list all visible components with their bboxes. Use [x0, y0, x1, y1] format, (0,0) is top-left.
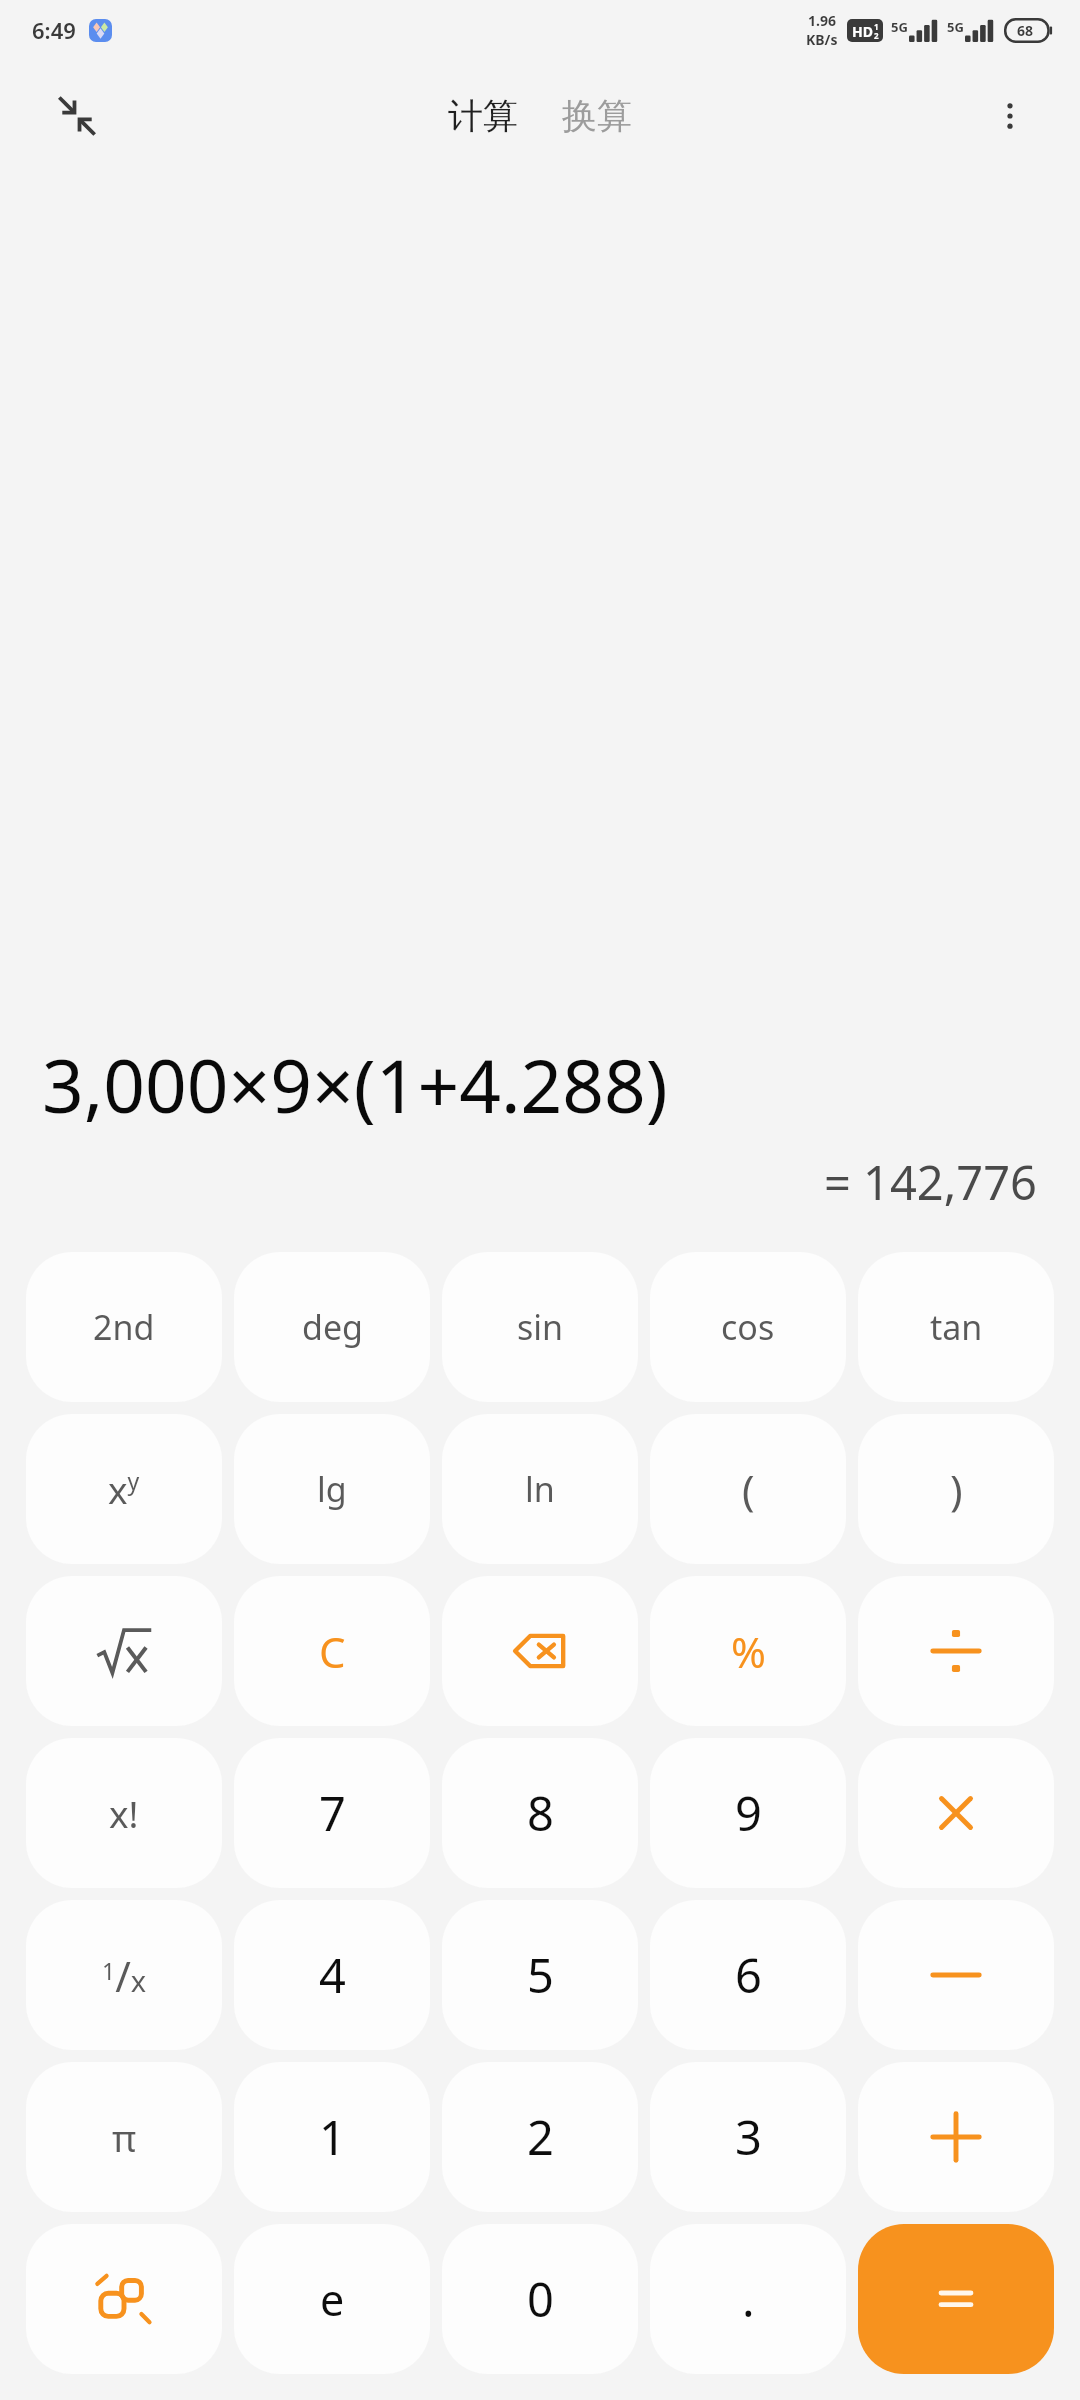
- staticText: xy: [108, 1464, 140, 1514]
- staticText: 3,000×9×(1+4.288): [42, 1035, 668, 1134]
- staticText: ): [950, 1461, 963, 1518]
- button[interactable]: Multiply: [858, 1738, 1054, 1888]
- staticText: e: [320, 2270, 345, 2329]
- button[interactable]: (: [650, 1414, 846, 1564]
- staticText: π: [112, 2112, 137, 2162]
- staticText: (: [742, 1461, 755, 1518]
- staticText: 1: [319, 2105, 346, 2169]
- staticText: 8: [527, 1781, 554, 1845]
- staticText: 1: [874, 21, 879, 32]
- button[interactable]: .: [650, 2224, 846, 2374]
- staticText: 7: [319, 1781, 346, 1845]
- staticText: x!: [109, 1788, 139, 1838]
- staticText: 9: [735, 1781, 762, 1845]
- staticText: 2: [527, 2105, 554, 2169]
- button[interactable]: e: [234, 2224, 430, 2374]
- button[interactable]: 7: [234, 1738, 430, 1888]
- staticText: %: [731, 1623, 766, 1680]
- staticText: 3: [735, 2105, 762, 2169]
- staticText: 计算: [448, 94, 518, 138]
- staticText: 1/x: [102, 1947, 147, 2004]
- button[interactable]: ): [858, 1414, 1054, 1564]
- button[interactable]: 5: [442, 1900, 638, 2050]
- button[interactable]: x!: [26, 1738, 222, 1888]
- button[interactable]: 9: [650, 1738, 846, 1888]
- button[interactable]: Divide: [858, 1576, 1054, 1726]
- staticText: 68: [1017, 21, 1034, 40]
- button[interactable]: lg: [234, 1414, 430, 1564]
- staticText: .: [742, 2267, 755, 2331]
- button[interactable]: xy: [26, 1414, 222, 1564]
- button[interactable]: 6: [650, 1900, 846, 2050]
- button[interactable]: 4: [234, 1900, 430, 2050]
- staticText: lg: [317, 1466, 347, 1512]
- button[interactable]: Backspace: [442, 1576, 638, 1726]
- staticText: C: [319, 1623, 346, 1680]
- button[interactable]: Square root: [26, 1576, 222, 1726]
- button[interactable]: 8: [442, 1738, 638, 1888]
- button[interactable]: %: [650, 1576, 846, 1726]
- staticText: 2: [874, 30, 879, 41]
- button[interactable]: Plus: [858, 2062, 1054, 2212]
- staticText: 换算: [562, 94, 632, 138]
- staticText: 5G: [947, 18, 964, 36]
- button[interactable]: 3: [650, 2062, 846, 2212]
- staticText: 5: [527, 1943, 554, 2007]
- button[interactable]: More options: [980, 86, 1040, 146]
- staticText: 6: [735, 1943, 762, 2007]
- button[interactable]: tan: [858, 1252, 1054, 1402]
- staticText: deg: [302, 1304, 363, 1350]
- staticText: 1.96: [808, 11, 836, 30]
- staticText: 0: [527, 2267, 554, 2331]
- button[interactable]: 计算: [436, 86, 530, 146]
- staticText: tan: [930, 1304, 983, 1350]
- button[interactable]: cos: [650, 1252, 846, 1402]
- button[interactable]: 1/x: [26, 1900, 222, 2050]
- staticText: 4: [319, 1943, 346, 2007]
- staticText: 5G: [891, 18, 908, 36]
- button[interactable]: Random: [26, 2224, 222, 2374]
- button[interactable]: deg: [234, 1252, 430, 1402]
- button[interactable]: sin: [442, 1252, 638, 1402]
- button[interactable]: 2: [442, 2062, 638, 2212]
- staticText: 6:49: [32, 15, 76, 45]
- staticText: ln: [525, 1466, 555, 1512]
- staticText: = 142,776: [824, 1150, 1038, 1214]
- button[interactable]: 0: [442, 2224, 638, 2374]
- staticText: 2nd: [93, 1304, 155, 1350]
- button[interactable]: 1: [234, 2062, 430, 2212]
- staticText: HD: [852, 22, 873, 41]
- button[interactable]: Minus: [858, 1900, 1054, 2050]
- button[interactable]: Equals: [858, 2224, 1054, 2374]
- button[interactable]: π: [26, 2062, 222, 2212]
- button[interactable]: 2nd: [26, 1252, 222, 1402]
- staticText: KB/s: [806, 30, 838, 49]
- button[interactable]: C: [234, 1576, 430, 1726]
- button[interactable]: ln: [442, 1414, 638, 1564]
- staticText: sin: [517, 1304, 564, 1350]
- staticText: cos: [721, 1304, 775, 1350]
- button[interactable]: Collapse: [44, 83, 110, 149]
- button[interactable]: 换算: [550, 86, 644, 146]
